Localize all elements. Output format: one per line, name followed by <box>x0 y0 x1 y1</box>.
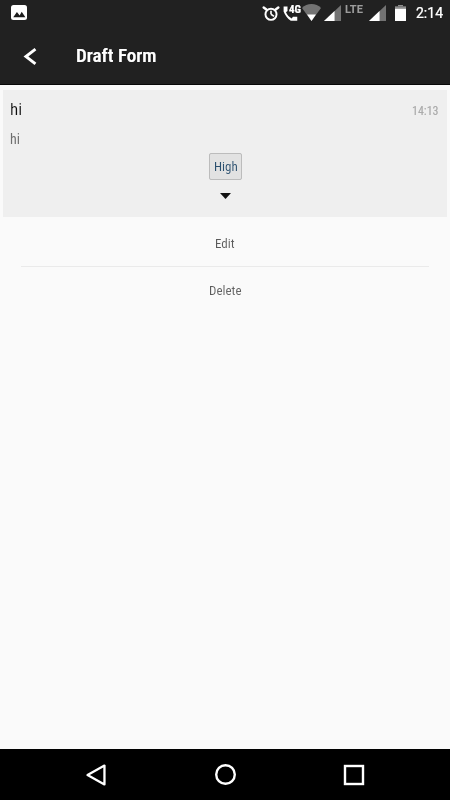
staticText: 14:13 <box>412 104 439 118</box>
staticText: Edit <box>215 236 235 251</box>
staticText: hi <box>10 99 23 119</box>
staticText: High <box>214 159 238 174</box>
staticText: Delete <box>209 283 242 298</box>
button[interactable]: hi <box>3 90 447 217</box>
button[interactable]: Back <box>66 749 126 800</box>
staticText: 4G <box>289 3 302 16</box>
button[interactable]: Home <box>195 749 255 800</box>
button[interactable]: Navigate up <box>0 28 56 84</box>
button[interactable]: High <box>209 153 242 180</box>
button[interactable]: Edit <box>0 220 450 266</box>
staticText: Draft Form <box>76 44 157 66</box>
staticText: hi <box>10 131 20 147</box>
staticText: 2:14 <box>416 5 443 21</box>
button[interactable]: Recent apps <box>324 749 384 800</box>
button[interactable]: Delete <box>0 267 450 313</box>
staticText: LTE <box>345 3 363 16</box>
